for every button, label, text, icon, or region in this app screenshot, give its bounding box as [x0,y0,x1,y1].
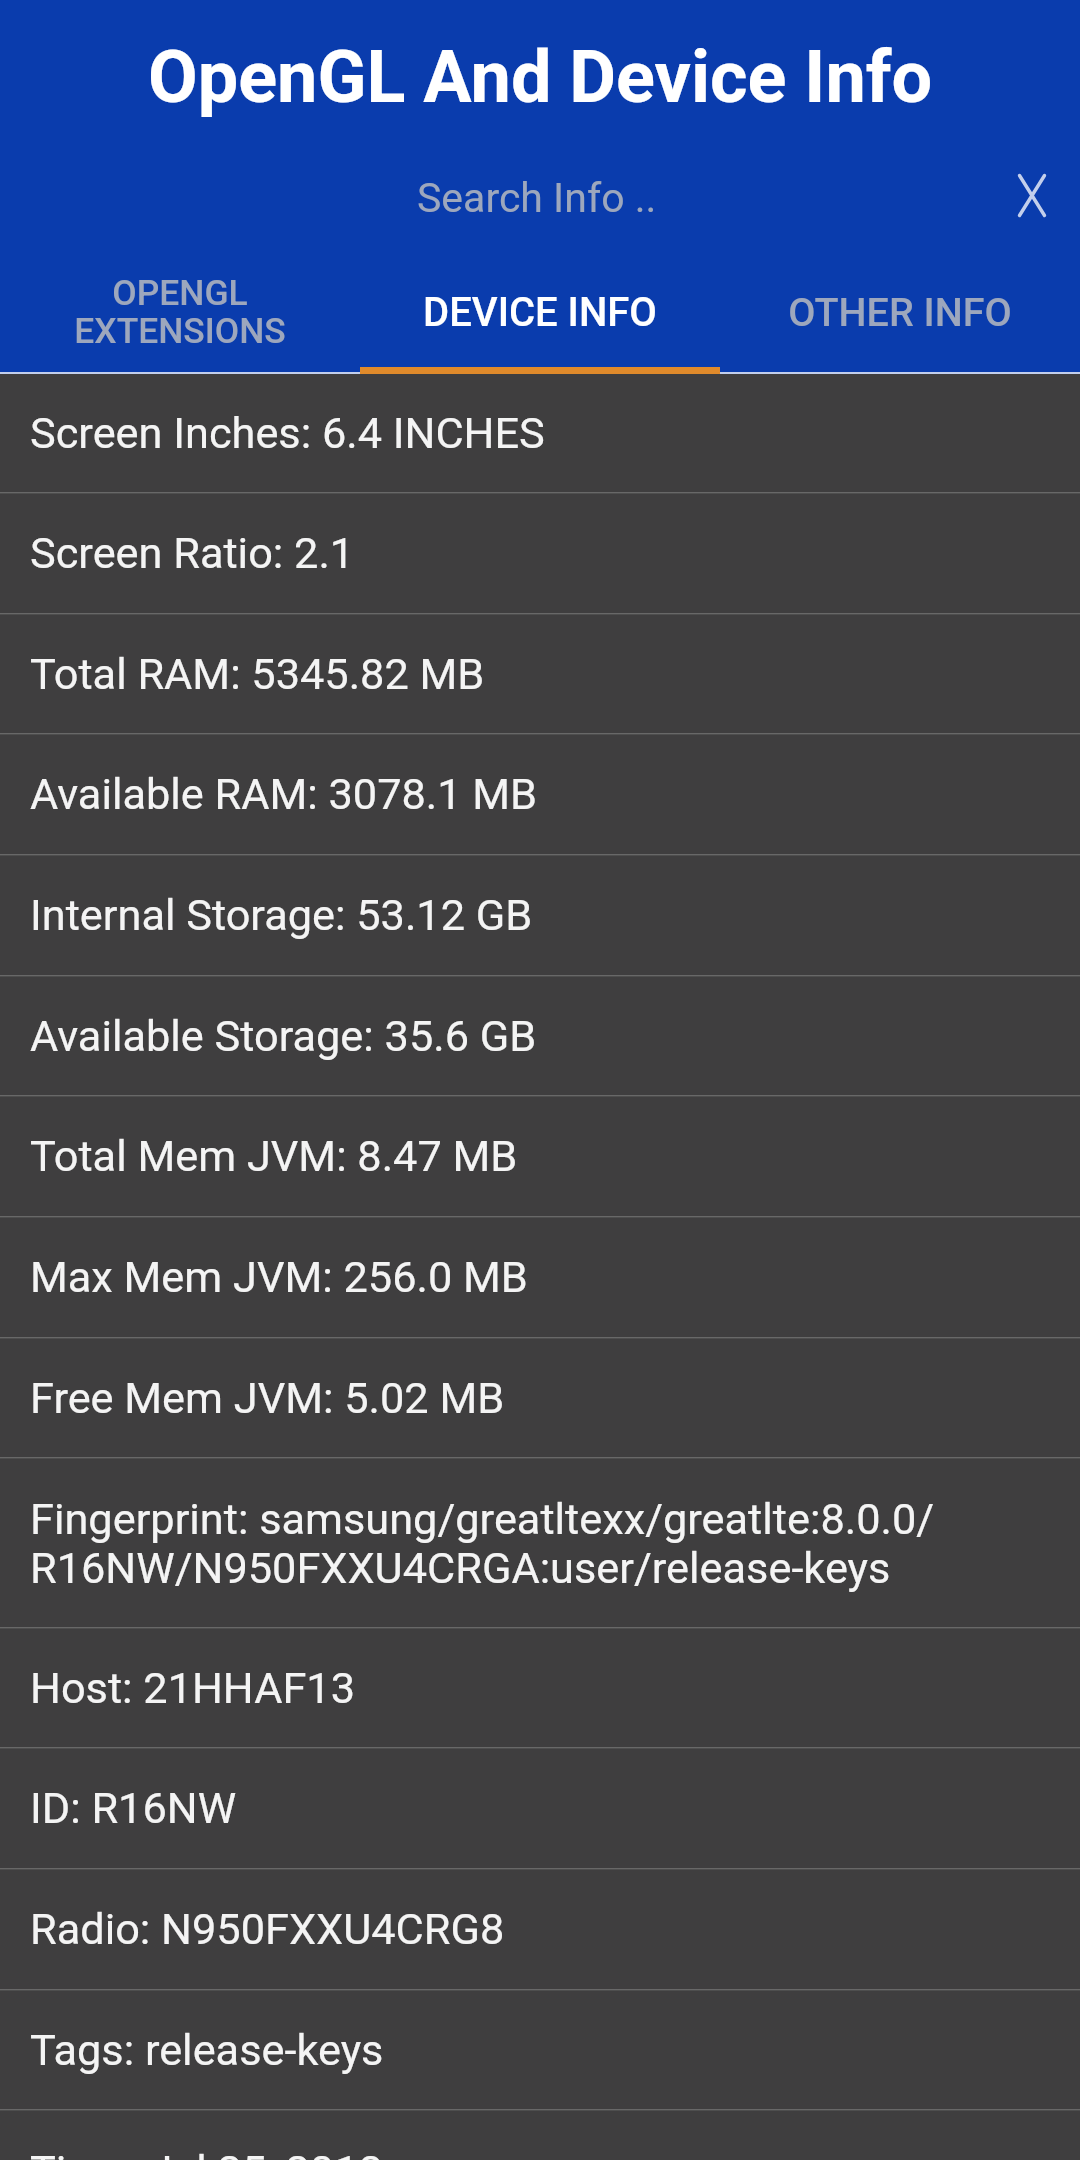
staticText: Free Mem JVM: 5.02 MB [30,1373,505,1424]
staticText: Total RAM: 5345.82 MB [30,649,485,700]
staticText: Available Storage: 35.6 GB [30,1011,537,1062]
staticText: OpenGL And Device Info [148,35,933,119]
staticText: Max Mem JVM: 256.0 MB [30,1252,528,1303]
button[interactable]: Free Mem JVM: 5.02 MB [0,1339,1080,1457]
button[interactable]: OTHER INFO [720,250,1080,374]
button[interactable]: Clear search [990,150,1080,250]
button[interactable]: Host: 21HHAF13 [0,1629,1080,1747]
button[interactable]: OPENGL EXTENSIONS [0,250,360,374]
staticText: Screen Ratio: 2.1 [30,528,355,579]
staticText: OPENGL EXTENSIONS [74,272,286,352]
staticText: Fingerprint: samsung/greatltexx/greatlte… [30,1494,935,1593]
button[interactable]: Available RAM: 3078.1 MB [0,735,1080,854]
staticText: Internal Storage: 53.12 GB [30,890,533,941]
button[interactable]: Screen Inches: 6.4 INCHES [0,374,1080,492]
button[interactable]: ID: R16NW [0,1749,1080,1868]
button[interactable]: Screen Ratio: 2.1 [0,494,1080,613]
button[interactable]: Search Info .. [0,150,1080,250]
button[interactable]: Total Mem JVM: 8.47 MB [0,1097,1080,1216]
button[interactable]: Internal Storage: 53.12 GB [0,856,1080,975]
staticText: Time: Jul 25, 2018 [30,2146,383,2160]
button[interactable]: DEVICE INFO [360,250,720,374]
button[interactable]: Tags: release-keys [0,1991,1080,2109]
staticText: Tags: release-keys [30,2025,384,2076]
staticText: Radio: N950FXXU4CRG8 [30,1904,505,1955]
button[interactable]: Time: Jul 25, 2018 [0,2111,1080,2160]
button[interactable]: Max Mem JVM: 256.0 MB [0,1218,1080,1337]
staticText: ID: R16NW [30,1783,237,1834]
staticText: Total Mem JVM: 8.47 MB [30,1131,518,1182]
button[interactable]: Fingerprint: samsung/greatltexx/greatlte… [0,1459,1080,1627]
button[interactable]: Total RAM: 5345.82 MB [0,615,1080,733]
staticText: Available RAM: 3078.1 MB [30,769,538,820]
button[interactable]: Radio: N950FXXU4CRG8 [0,1870,1080,1989]
staticText: OTHER INFO [788,289,1012,335]
button[interactable]: Available Storage: 35.6 GB [0,977,1080,1095]
staticText: Host: 21HHAF13 [30,1663,355,1714]
staticText: Search Info .. [417,174,657,222]
staticText: DEVICE INFO [423,289,657,336]
staticText: Screen Inches: 6.4 INCHES [30,408,545,459]
